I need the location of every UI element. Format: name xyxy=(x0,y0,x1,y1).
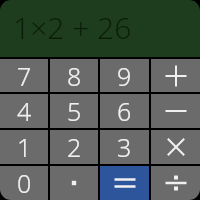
staticText: 6 xyxy=(117,94,132,128)
button[interactable]: 2 xyxy=(50,130,98,164)
staticText: 1×2 + 26 xyxy=(13,7,132,48)
button[interactable]: Multiply xyxy=(151,130,200,164)
button[interactable]: Plus xyxy=(151,59,200,92)
button[interactable]: 4 xyxy=(0,94,48,128)
button[interactable]: 7 xyxy=(0,59,48,92)
staticText: 3 xyxy=(117,130,132,164)
button[interactable]: Decimal point xyxy=(50,166,98,200)
staticText: 9 xyxy=(117,59,132,92)
staticText: 0 xyxy=(17,166,32,200)
button[interactable]: Divide xyxy=(151,166,200,200)
button[interactable]: 1 xyxy=(0,130,48,164)
staticText: 4 xyxy=(17,94,32,128)
button[interactable]: 6 xyxy=(100,94,149,128)
button[interactable]: 5 xyxy=(50,94,98,128)
staticText: 8 xyxy=(67,59,82,92)
staticText: 1 xyxy=(17,130,32,164)
button[interactable]: Minus xyxy=(151,94,200,128)
button[interactable]: 9 xyxy=(100,59,149,92)
button[interactable]: 0 xyxy=(0,166,48,200)
staticText: 7 xyxy=(17,59,32,92)
staticText: 2 xyxy=(67,130,82,164)
staticText: 5 xyxy=(67,94,82,128)
button[interactable]: Equals xyxy=(100,166,149,200)
button[interactable]: 8 xyxy=(50,59,98,92)
button[interactable]: 3 xyxy=(100,130,149,164)
